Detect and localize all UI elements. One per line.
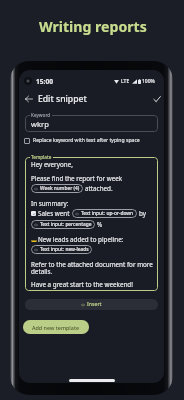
button[interactable]: Text input: percentage — [31, 220, 95, 229]
staticText: Add new template — [32, 324, 80, 331]
staticText: Sales went — [38, 209, 70, 218]
staticText: Text input: percentage — [40, 221, 92, 228]
button[interactable]: Week number (4) — [31, 184, 83, 193]
staticText: Please find the report for week — [31, 174, 123, 183]
staticText: 15:00 — [36, 77, 53, 86]
staticText: wkrp — [31, 119, 49, 129]
staticText: Refer to the attached document for more — [31, 260, 153, 269]
button[interactable]: Navigate back — [22, 92, 36, 106]
staticText: Writing reports — [39, 17, 147, 36]
staticText: Text input: new-leads — [40, 246, 89, 253]
button[interactable]: Replace keyword with text after typing s… — [24, 136, 164, 145]
staticText: details. — [31, 267, 53, 276]
button[interactable]: Text input: up-or-down — [72, 209, 137, 218]
button[interactable]: Insert — [25, 299, 158, 310]
staticText: Text input: up-or-down — [81, 210, 134, 217]
staticText: Hey everyone, — [31, 160, 73, 169]
button[interactable]: Save snippet — [150, 92, 164, 106]
button[interactable]: Add new template — [23, 320, 89, 334]
staticText: 100% — [142, 78, 155, 85]
staticText: New leads added to pipeline: — [38, 235, 124, 244]
staticText: Week number (4) — [40, 185, 80, 192]
button[interactable]: wkrp — [25, 115, 158, 132]
staticText: Edit snippet — [38, 93, 87, 105]
staticText: by — [139, 209, 146, 218]
staticText: Template — [31, 154, 52, 160]
staticText: Insert — [87, 301, 102, 308]
button[interactable]: Text input: new-leads — [31, 245, 92, 254]
staticText: Keyword — [31, 112, 51, 118]
staticText: attached. — [85, 184, 113, 193]
staticText: LTE — [121, 78, 130, 85]
staticText: % — [97, 220, 103, 229]
staticText: In summary: — [31, 199, 69, 208]
staticText: Replace keyword with text after typing s… — [33, 137, 140, 144]
staticText: Have a great start to the weekend! — [31, 280, 133, 289]
